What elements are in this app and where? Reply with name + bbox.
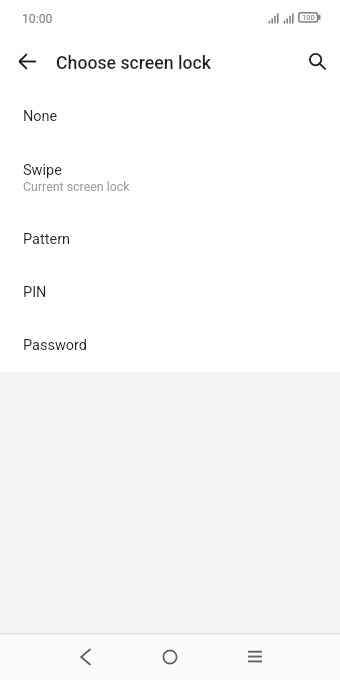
button[interactable]: Home — [127, 635, 212, 678]
staticText: Current screen lock — [23, 179, 130, 194]
button[interactable]: None — [0, 90, 340, 143]
button[interactable]: PIN — [0, 266, 340, 319]
staticText: Swipe — [23, 162, 62, 179]
staticText: Pattern — [23, 231, 71, 248]
staticText: Password — [23, 337, 88, 354]
button[interactable]: Search — [302, 46, 334, 78]
button[interactable]: Navigate up — [11, 45, 43, 77]
staticText: PIN — [23, 284, 47, 301]
button[interactable]: Pattern — [0, 213, 340, 266]
button[interactable]: Swipe — [0, 143, 340, 213]
button[interactable]: Password — [0, 319, 340, 372]
staticText: Choose screen lock — [56, 53, 212, 74]
button[interactable]: Back — [43, 635, 127, 678]
button[interactable]: Recent apps — [212, 635, 297, 678]
staticText: 100 — [302, 13, 315, 22]
staticText: 10:00 — [22, 12, 53, 26]
staticText: None — [23, 108, 58, 125]
